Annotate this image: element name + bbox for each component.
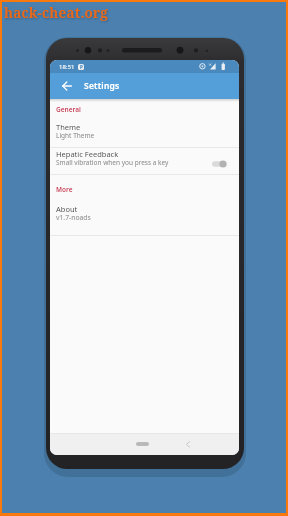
button[interactable]: Hepatic Feedback <box>50 148 239 174</box>
button[interactable] <box>136 442 149 446</box>
button[interactable] <box>185 441 191 448</box>
staticText: Theme <box>56 122 81 132</box>
staticText: More <box>56 185 73 194</box>
staticText: Settings <box>84 80 120 92</box>
button[interactable]: About <box>50 202 239 228</box>
staticText: v1.7-noads <box>56 213 91 222</box>
button[interactable] <box>62 81 72 91</box>
staticText: General <box>56 105 81 114</box>
staticText: About <box>56 204 78 214</box>
staticText: Small vibration when you press a key <box>56 158 169 167</box>
staticText: 18:51 <box>59 63 75 71</box>
staticText: hack-cheat.org <box>4 4 109 22</box>
staticText: Hepatic Feedback <box>56 149 119 159</box>
staticText: P <box>80 64 83 70</box>
button[interactable]: Theme <box>50 120 239 147</box>
staticText: Light Theme <box>56 131 95 140</box>
button[interactable] <box>212 160 227 168</box>
